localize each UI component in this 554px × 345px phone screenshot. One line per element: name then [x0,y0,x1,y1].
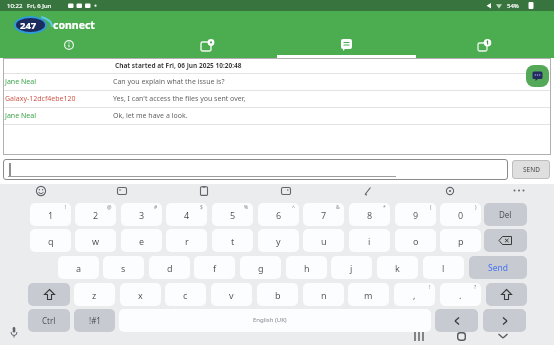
button[interactable]: 5 [212,203,253,226]
button[interactable]: 3 [121,203,162,226]
button[interactable]: SEND [512,160,550,179]
button[interactable]: , [394,283,435,306]
button[interactable]: r [166,229,207,252]
button[interactable]: y [258,229,299,252]
button[interactable]: 4 [166,203,207,226]
button[interactable]: j [331,256,372,279]
button[interactable] [483,309,526,332]
staticText: ^ [292,204,295,211]
button[interactable]: p [440,229,481,252]
button[interactable]: Ctrl [28,309,70,332]
button[interactable]: u [303,229,344,252]
button[interactable] [138,35,277,55]
button[interactable]: 7 [303,203,344,226]
button[interactable] [416,35,554,55]
button[interactable]: Del [484,203,527,226]
button[interactable]: 6 [258,203,299,226]
staticText: ! [429,284,431,291]
button[interactable]: 1 [30,203,71,226]
button[interactable]: t [212,229,253,252]
button[interactable] [510,184,528,197]
staticText: Chat started at Fri, 06 Jun 2025 10:20:4… [115,61,242,70]
button[interactable]: i [349,229,390,252]
button[interactable]: d [149,256,190,279]
staticText: x [138,289,143,301]
staticText: 247 [20,19,37,32]
button[interactable] [526,65,549,87]
button[interactable] [8,326,20,339]
button[interactable] [435,309,478,332]
staticText: % [244,204,249,211]
button[interactable] [28,283,70,306]
button[interactable]: g [240,256,281,279]
staticText: . [459,289,462,301]
staticText: k [395,262,400,274]
button[interactable]: 0 [440,203,481,226]
staticText: , [413,289,416,301]
button[interactable]: b [257,283,298,306]
button[interactable] [277,35,416,55]
staticText: 5 [230,209,236,221]
button[interactable] [115,184,128,197]
staticText: Jane Neal [5,77,113,87]
staticText: 6 [276,209,282,221]
button[interactable] [443,184,456,197]
button[interactable]: l [423,256,464,279]
button[interactable]: 2 [75,203,116,226]
button[interactable] [361,184,374,197]
staticText: !#1 [89,315,101,326]
button[interactable]: w [75,229,116,252]
button[interactable]: Send [469,256,527,279]
button[interactable]: c [165,283,206,306]
staticText: 8 [367,209,373,221]
button[interactable]: k [377,256,418,279]
staticText: 9 [413,209,419,221]
button[interactable]: e [121,229,162,252]
staticText: @ [107,204,112,211]
staticText: & [336,204,340,211]
button[interactable]: 8 [349,203,390,226]
staticText: 10:22 Fri, 6 Jun [7,2,52,10]
button[interactable]: x [120,283,161,306]
button[interactable]: f [194,256,235,279]
button[interactable]: . [440,283,481,306]
button[interactable] [197,184,210,197]
button[interactable]: z [74,283,115,306]
button[interactable]: n [303,283,344,306]
staticText: Yes, I can't access the files you sent o… [113,94,246,104]
staticText: 54% [507,2,519,10]
button[interactable]: 9 [395,203,436,226]
staticText: a [76,262,82,274]
staticText: Ok, let me have a look. [113,111,188,121]
button[interactable] [119,309,431,332]
button[interactable] [486,283,527,306]
staticText: ) [475,204,477,211]
button[interactable] [494,329,512,343]
staticText: z [92,289,97,301]
button[interactable]: q [30,229,71,252]
staticText: Galaxy-12dcf4ebe120 [5,94,113,104]
staticText: $ [200,204,203,211]
staticText: Jane Neal [5,111,113,121]
staticText: r [185,235,189,247]
button[interactable]: m [348,283,389,306]
button[interactable] [452,329,470,343]
staticText: c [183,289,188,301]
staticText: o [413,235,419,247]
button[interactable]: a [58,256,99,279]
button[interactable] [484,229,527,252]
button[interactable] [34,184,47,197]
button[interactable]: o [395,229,436,252]
button[interactable] [0,35,138,55]
button[interactable]: !#1 [74,309,115,332]
staticText: SEND [523,165,540,174]
button[interactable] [279,184,292,197]
staticText: Del [499,209,512,220]
button[interactable] [410,329,428,343]
button[interactable]: h [286,256,327,279]
staticText: t [231,235,235,247]
staticText: i [368,235,371,247]
button[interactable]: v [211,283,252,306]
button[interactable]: s [103,256,144,279]
staticText: Ctrl [42,315,56,326]
